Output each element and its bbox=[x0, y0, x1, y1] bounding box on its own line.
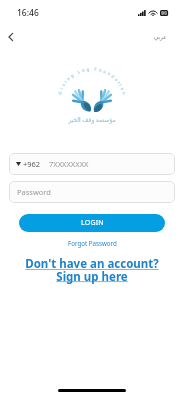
staticText: Forgot Password bbox=[68, 239, 117, 247]
staticText: 7XXXXXXXX bbox=[49, 159, 89, 169]
staticText: +962 bbox=[23, 159, 41, 169]
button[interactable]: Back bbox=[2, 28, 20, 46]
button[interactable]: Forgot Password bbox=[0, 239, 184, 247]
button[interactable]: LOGIN bbox=[19, 214, 165, 232]
staticText: Don't have an account? Sign up here bbox=[25, 256, 159, 284]
button[interactable]: +962 bbox=[9, 153, 175, 175]
staticText: 16:46 bbox=[17, 7, 39, 19]
staticText: Password bbox=[17, 187, 51, 197]
staticText: LOGIN bbox=[81, 218, 104, 228]
button[interactable]: Password bbox=[9, 181, 175, 203]
staticText: عربي bbox=[154, 34, 167, 40]
button[interactable]: عربي bbox=[154, 34, 167, 40]
button[interactable]: Don't have an account? Sign up here bbox=[0, 256, 184, 284]
staticText: مؤسسة وقف الخير bbox=[68, 116, 116, 124]
